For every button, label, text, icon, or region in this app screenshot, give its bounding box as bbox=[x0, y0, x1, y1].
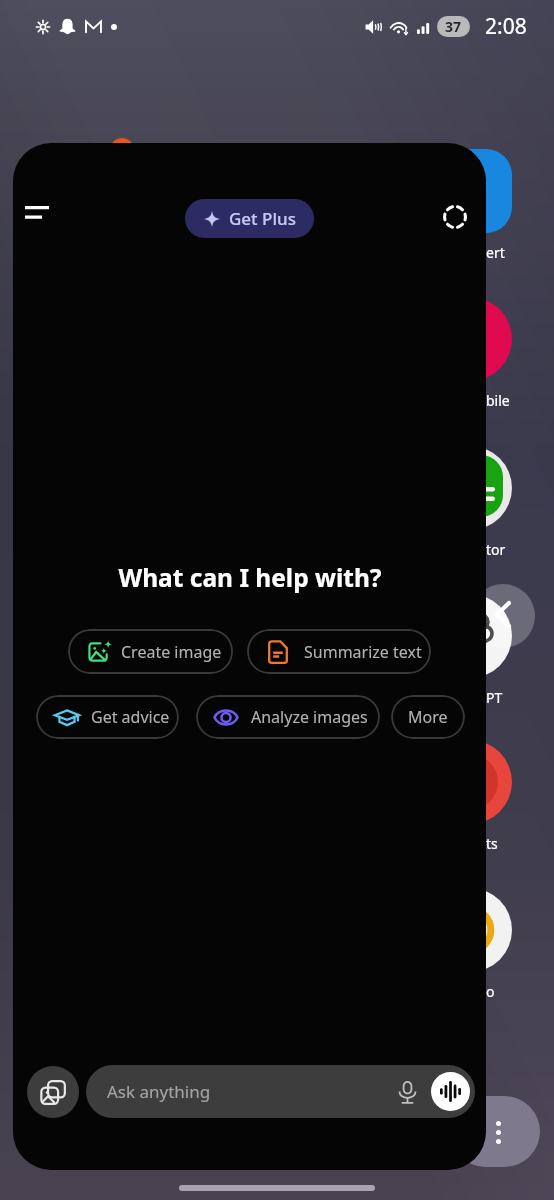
button[interactable]: Voice mode bbox=[431, 1072, 470, 1111]
button[interactable]: Get Plus bbox=[185, 199, 314, 238]
staticText: 37 bbox=[445, 17, 462, 36]
staticText: 2:08 bbox=[485, 12, 527, 41]
button[interactable]: Ask anything bbox=[86, 1065, 475, 1118]
button[interactable]: More options bbox=[450, 1096, 540, 1167]
staticText: bile bbox=[486, 391, 510, 410]
button[interactable]: Summarize text bbox=[247, 629, 431, 674]
button[interactable]: Add photo bbox=[27, 1066, 79, 1118]
button[interactable]: Temporary chat bbox=[434, 196, 476, 238]
staticText: ert bbox=[486, 243, 505, 262]
staticText: Create image bbox=[121, 641, 222, 663]
staticText: PT bbox=[486, 688, 503, 707]
staticText: What can I help with? bbox=[118, 561, 382, 594]
staticText: Analyze images bbox=[251, 706, 368, 728]
button[interactable]: Dictate bbox=[387, 1072, 427, 1112]
button[interactable]: Analyze images bbox=[196, 695, 380, 739]
staticText: ts bbox=[486, 834, 498, 853]
button[interactable]: Menu bbox=[15, 191, 59, 235]
staticText: Get Plus bbox=[229, 207, 296, 230]
staticText: Get advice bbox=[91, 706, 170, 728]
button[interactable]: More bbox=[391, 695, 465, 739]
staticText: More bbox=[408, 706, 448, 728]
staticText: tor bbox=[486, 540, 506, 559]
staticText: Ask anything bbox=[107, 1080, 211, 1103]
button[interactable]: Create image bbox=[68, 629, 233, 674]
button[interactable]: Get advice bbox=[36, 695, 179, 739]
staticText: Summarize text bbox=[304, 641, 422, 663]
staticText: o bbox=[486, 982, 495, 1001]
